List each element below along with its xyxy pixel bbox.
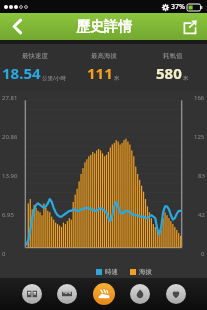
button[interactable]: 海拔: [130, 268, 152, 276]
button[interactable]: 時速: [96, 268, 118, 276]
staticText: 580: [156, 63, 182, 83]
staticText: 時速: [105, 268, 118, 276]
staticText: 海拔: [139, 268, 152, 276]
button[interactable]: 最高海拔: [69, 52, 138, 83]
staticText: 20.86: [2, 133, 18, 141]
button[interactable]: Share: [173, 13, 207, 40]
staticText: 83: [198, 172, 205, 180]
staticText: 125: [194, 133, 205, 141]
staticText: 37%: [171, 2, 185, 12]
staticText: 耗氧值: [163, 52, 183, 60]
staticText: 米: [183, 75, 189, 82]
staticText: 最快速度: [22, 52, 48, 60]
staticText: 13.90: [2, 172, 18, 180]
button[interactable]: 最快速度: [0, 52, 69, 83]
staticText: 27.81: [2, 94, 18, 102]
staticText: 166: [194, 94, 205, 102]
staticText: 最高海拔: [91, 52, 117, 60]
button[interactable]: Activity: [93, 283, 115, 305]
button[interactable]: Heart rate: [166, 284, 186, 304]
button[interactable]: Back: [0, 13, 34, 40]
button[interactable]: Distance: [57, 284, 77, 304]
button[interactable]: 耗氧值: [138, 52, 207, 83]
staticText: 公里/小時: [42, 74, 67, 82]
staticText: 0: [201, 250, 205, 258]
staticText: 歷史詳情: [76, 18, 132, 36]
button[interactable]: Map: [22, 284, 42, 304]
staticText: 6.95: [2, 211, 14, 219]
staticText: 18.54: [2, 63, 41, 83]
staticText: 111: [87, 63, 113, 83]
button[interactable]: Calories: [130, 284, 150, 304]
staticText: 米: [114, 75, 120, 82]
staticText: 42: [198, 211, 205, 219]
staticText: 0: [2, 250, 6, 258]
